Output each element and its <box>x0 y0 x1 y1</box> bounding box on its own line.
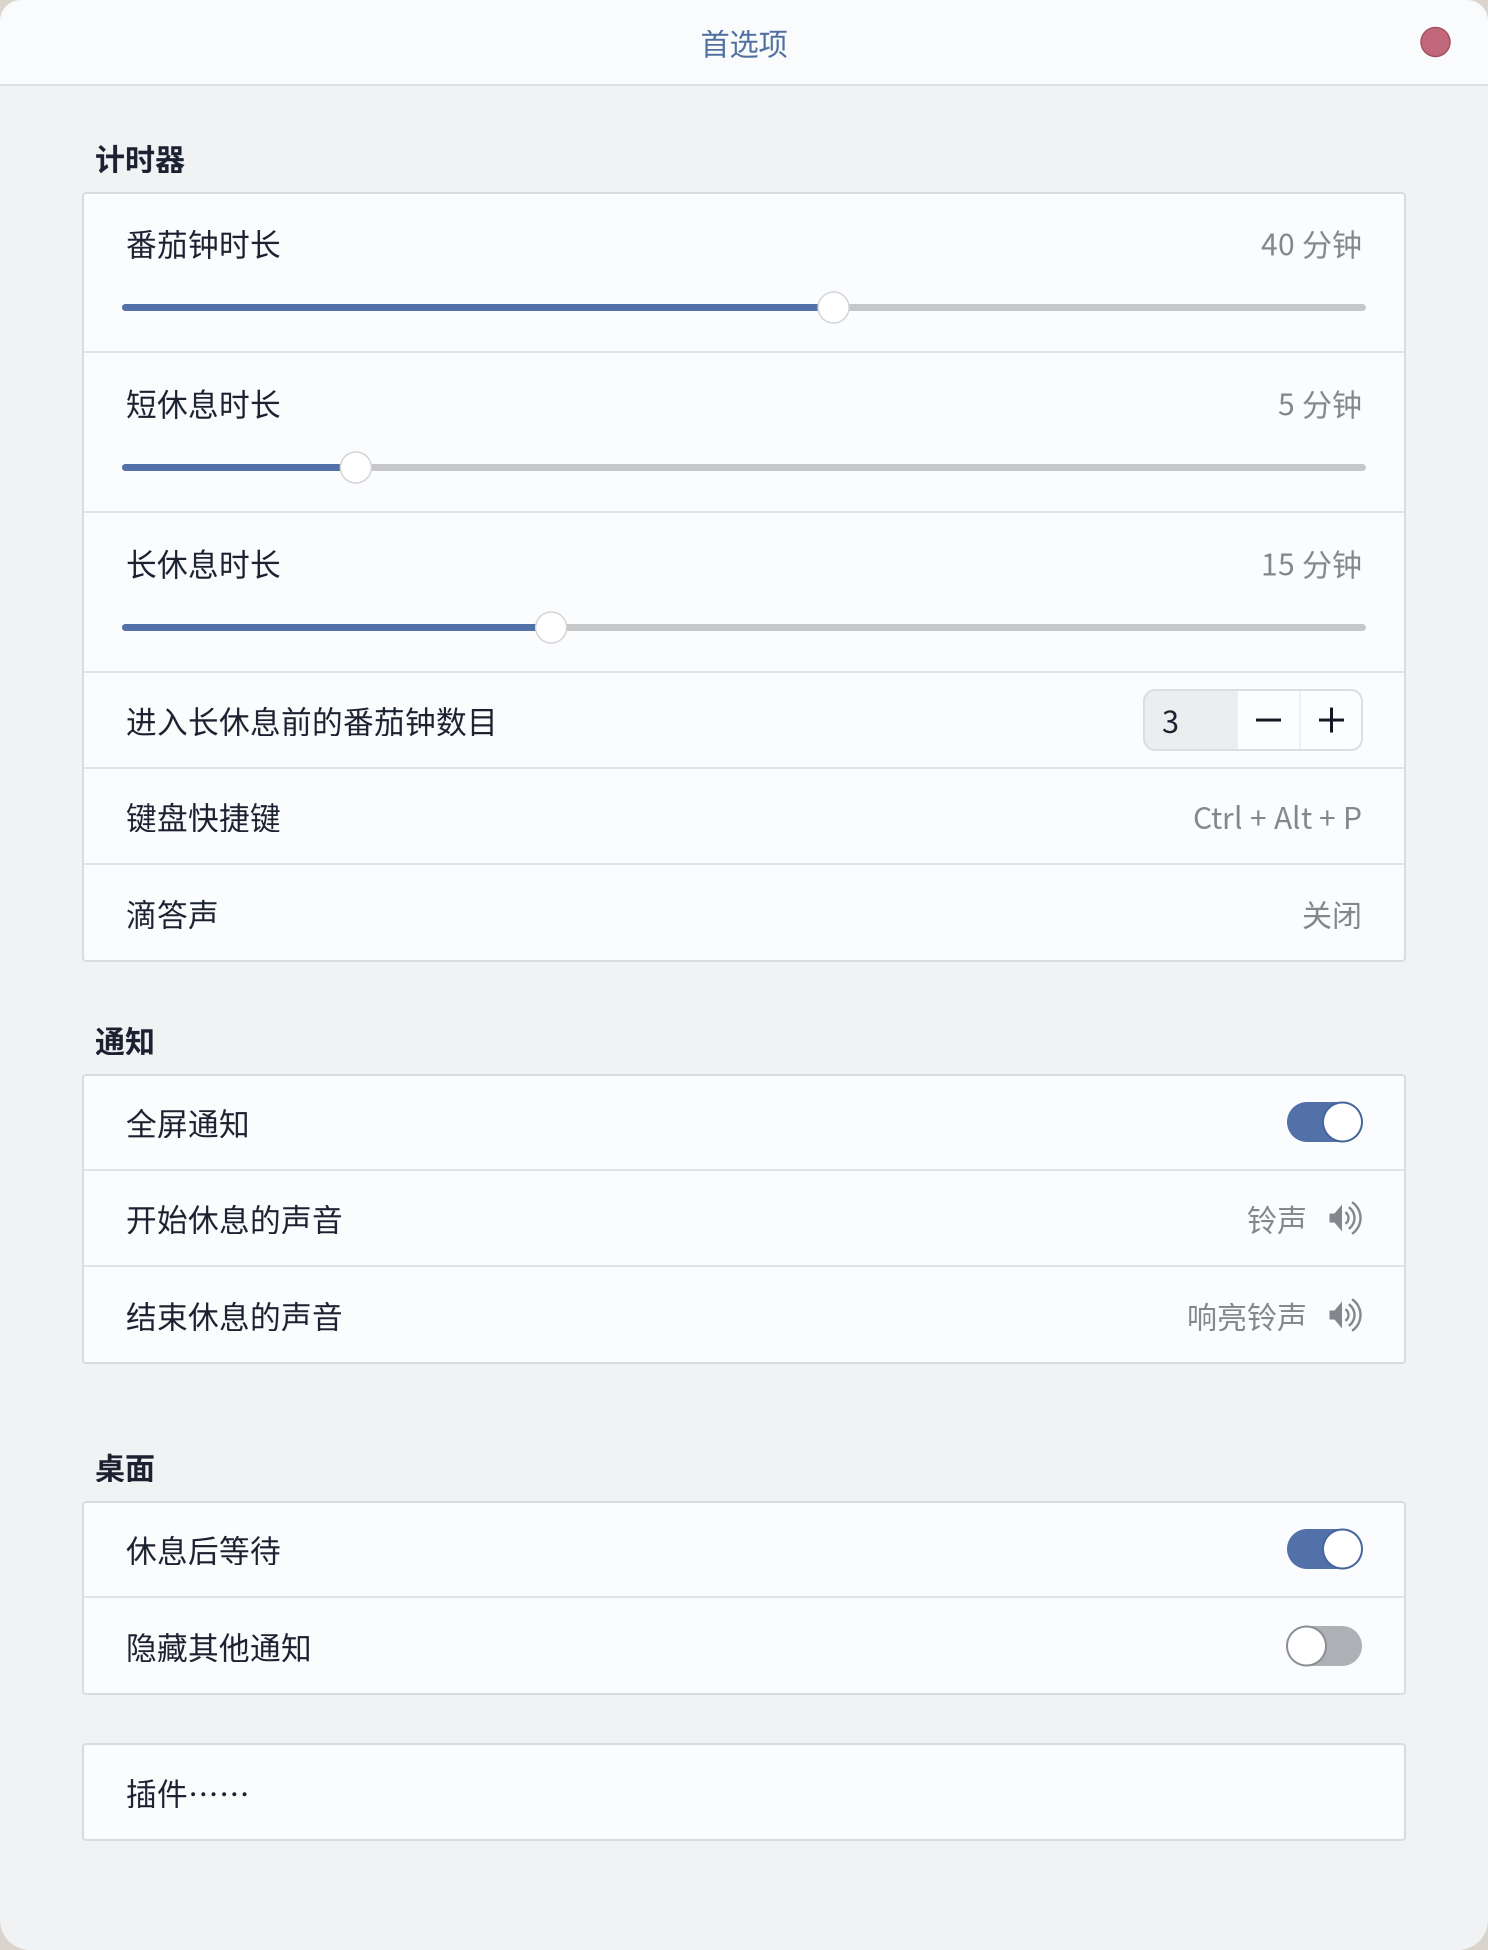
staticText: 5 分钟 <box>1278 381 1362 424</box>
button[interactable]: 全屏通知 <box>83 1075 1405 1169</box>
staticText: 长休息时长 <box>126 540 281 585</box>
button[interactable]: Adjust duration <box>122 292 1366 323</box>
staticText: 插件…… <box>126 1770 250 1814</box>
button[interactable]: 键盘快捷键 <box>83 769 1405 863</box>
staticText: 结束休息的声音 <box>126 1293 343 1337</box>
button[interactable]: 隐藏其他通知 <box>83 1598 1405 1694</box>
staticText: 滴答声 <box>126 891 219 935</box>
staticText: 休息后等待 <box>126 1527 281 1571</box>
staticText: 铃声 <box>1247 1196 1307 1240</box>
staticText: 40 分钟 <box>1261 221 1362 264</box>
staticText: 首选项 <box>700 21 787 63</box>
staticText: 关闭 <box>1302 891 1362 935</box>
staticText: 全屏通知 <box>126 1100 250 1144</box>
button[interactable]: Increase <box>1301 690 1362 750</box>
staticText: 开始休息的声音 <box>126 1196 343 1240</box>
staticText: 响亮铃声 <box>1187 1293 1307 1337</box>
button[interactable]: Adjust duration <box>122 452 1366 483</box>
staticText: 短休息时长 <box>126 380 281 425</box>
staticText: 15 分钟 <box>1261 541 1362 584</box>
staticText: 通知 <box>95 1018 155 1061</box>
staticText: 键盘快捷键 <box>126 794 281 838</box>
button[interactable]: Adjust duration <box>122 612 1366 643</box>
button[interactable]: 结束休息的声音 <box>83 1267 1405 1363</box>
button[interactable]: 休息后等待 <box>83 1502 1405 1596</box>
button[interactable]: Close window <box>1421 27 1488 56</box>
staticText: Ctrl + Alt + P <box>1193 794 1362 838</box>
staticText: 计时器 <box>95 136 185 179</box>
button[interactable]: 滴答声 <box>83 865 1405 961</box>
button[interactable]: 插件…… <box>83 1744 1405 1840</box>
button[interactable]: 开始休息的声音 <box>83 1171 1405 1265</box>
staticText: 3 <box>1162 698 1179 742</box>
staticText: 隐藏其他通知 <box>126 1624 312 1668</box>
staticText: 番茄钟时长 <box>126 220 281 265</box>
staticText: 桌面 <box>95 1445 155 1488</box>
staticText: 进入长休息前的番茄钟数目 <box>126 698 498 742</box>
button[interactable]: Decrease <box>1238 690 1299 750</box>
